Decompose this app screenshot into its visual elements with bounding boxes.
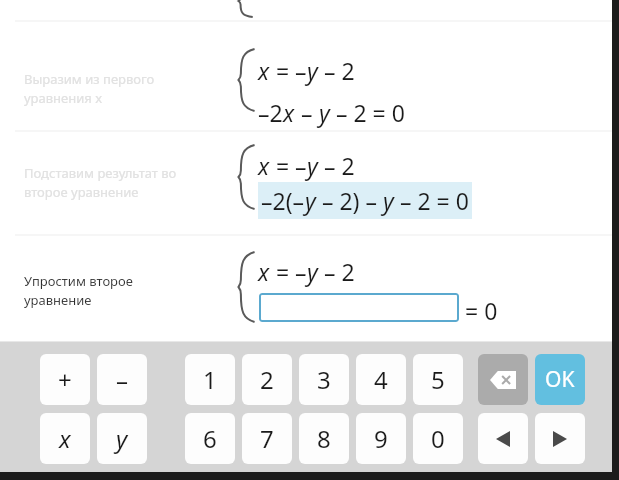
- button[interactable]: 8: [299, 413, 349, 464]
- staticText: 2: [260, 363, 274, 396]
- staticText: – 2: [318, 55, 355, 86]
- button[interactable]: 1: [185, 354, 235, 405]
- staticText: = –: [270, 256, 307, 287]
- staticText: –2(–: [261, 185, 305, 216]
- staticText: x: [283, 97, 295, 128]
- staticText: y: [383, 185, 394, 216]
- button[interactable]: Backspace: [478, 354, 528, 405]
- staticText: 1: [203, 363, 217, 396]
- staticText: 8: [317, 422, 331, 455]
- button[interactable]: 4: [356, 354, 406, 405]
- button[interactable]: y: [97, 413, 147, 464]
- staticText: x: [258, 55, 270, 86]
- staticText: y: [116, 422, 128, 455]
- staticText: – 2) –: [316, 185, 383, 216]
- button[interactable]: 0: [413, 413, 463, 464]
- button[interactable]: 2: [242, 354, 292, 405]
- button[interactable]: –: [97, 354, 147, 405]
- staticText: 7: [260, 422, 274, 455]
- staticText: – 2 = 0: [330, 97, 405, 128]
- staticText: y: [307, 150, 318, 181]
- staticText: 0: [431, 422, 445, 455]
- staticText: 3: [317, 363, 331, 396]
- staticText: OK: [545, 365, 575, 394]
- staticText: x: [258, 256, 270, 287]
- button[interactable]: 5: [413, 354, 463, 405]
- button[interactable]: 6: [185, 413, 235, 464]
- staticText: – 2 = 0: [394, 185, 469, 216]
- staticText: Подставим результат во второе уравнение: [24, 164, 177, 201]
- button[interactable]: x: [40, 413, 90, 464]
- staticText: x: [59, 422, 71, 455]
- staticText: – 2: [318, 256, 355, 287]
- staticText: 5: [431, 363, 445, 396]
- button[interactable]: OK: [535, 354, 585, 405]
- button[interactable]: [259, 293, 459, 322]
- button[interactable]: 7: [242, 413, 292, 464]
- button[interactable]: Упростим второе уравнение: [0, 236, 619, 340]
- button[interactable]: Move left: [478, 413, 528, 464]
- staticText: +: [58, 363, 72, 396]
- staticText: y: [307, 256, 318, 287]
- staticText: y: [307, 55, 318, 86]
- button[interactable]: Подставим результат во второе уравнение: [0, 132, 619, 234]
- staticText: Выразим из первого уравнения x: [24, 70, 155, 107]
- staticText: –: [295, 97, 319, 128]
- staticText: Упростим второе уравнение: [24, 272, 133, 309]
- staticText: 4: [374, 363, 388, 396]
- staticText: 9: [374, 422, 388, 455]
- button[interactable]: 3: [299, 354, 349, 405]
- staticText: x: [258, 150, 270, 181]
- staticText: 6: [203, 422, 217, 455]
- staticText: = –: [270, 150, 307, 181]
- staticText: = –: [270, 55, 307, 86]
- staticText: –2: [258, 97, 283, 128]
- staticText: y: [305, 185, 316, 216]
- button[interactable]: Выразим из первого уравнения x: [0, 22, 619, 130]
- button[interactable]: 9: [356, 413, 406, 464]
- button[interactable]: +: [40, 354, 90, 405]
- staticText: – 2: [318, 150, 355, 181]
- staticText: y: [319, 97, 330, 128]
- staticText: –: [116, 363, 128, 396]
- staticText: = 0: [465, 295, 498, 326]
- button[interactable]: Move right: [535, 413, 585, 464]
